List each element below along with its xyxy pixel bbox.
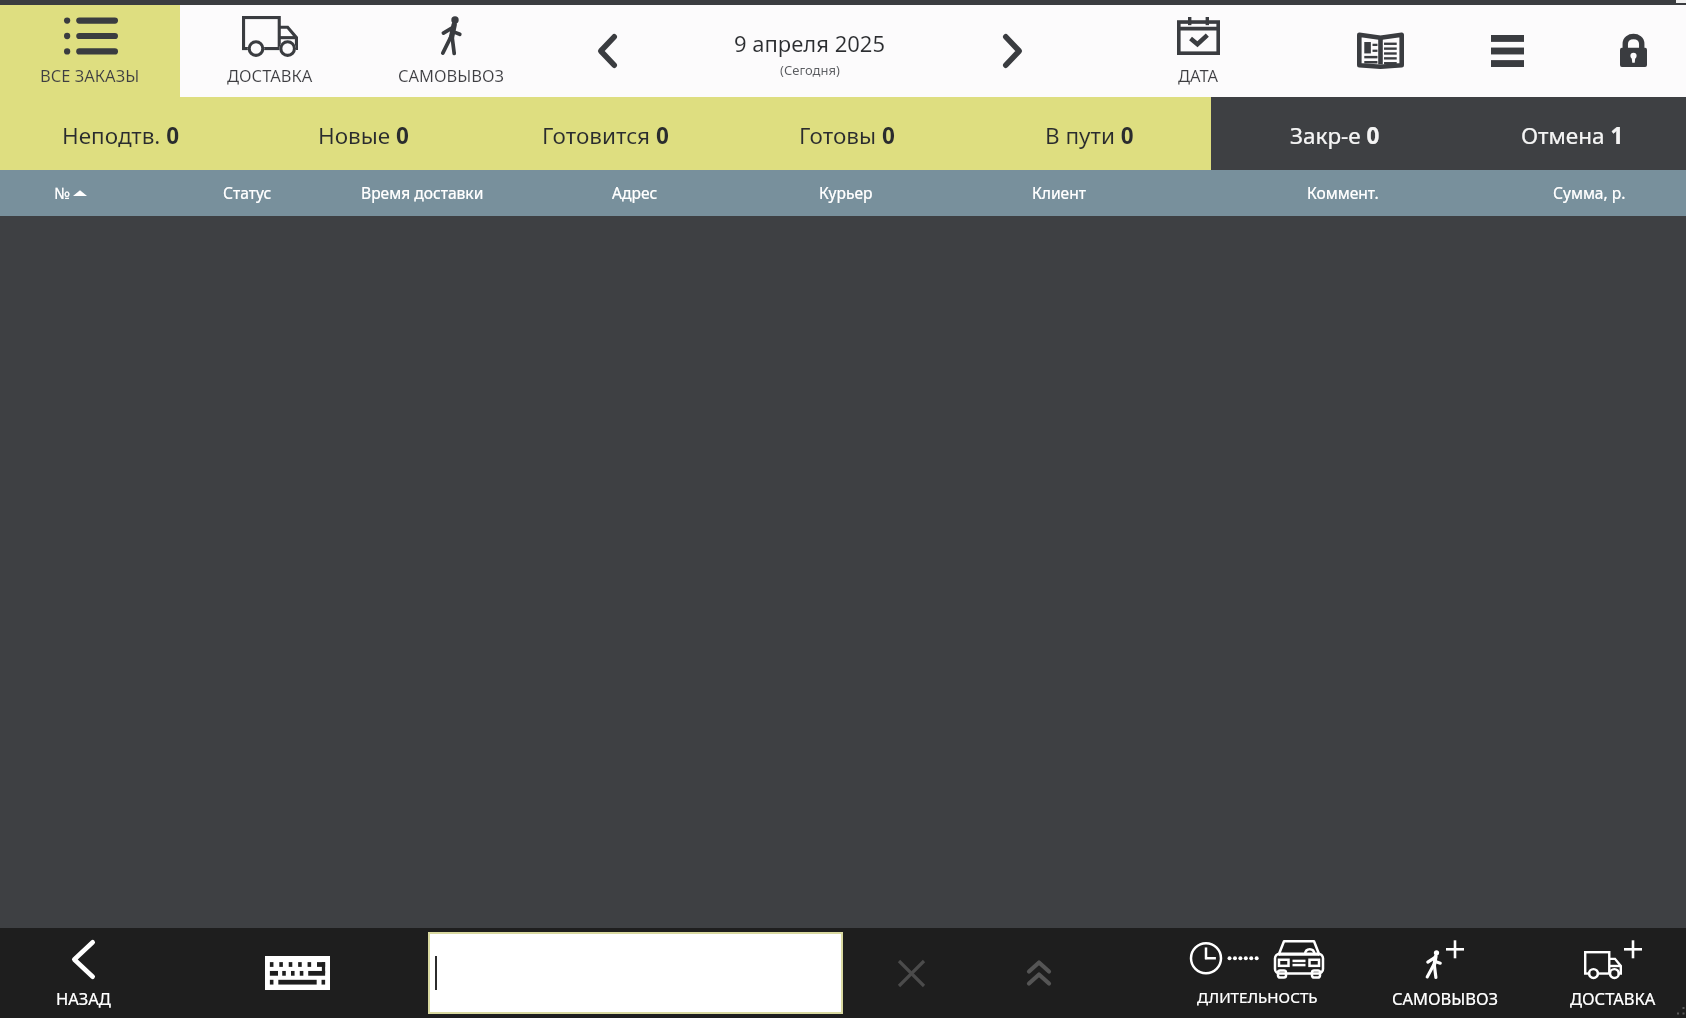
staticText: САМОВЫВОЗ: [398, 64, 504, 86]
button[interactable]: Неподтв. 0: [0, 97, 242, 170]
button[interactable]: Готовится 0: [484, 97, 726, 170]
button[interactable]: Следующий день: [966, 15, 1059, 87]
button[interactable]: №: [0, 170, 150, 216]
button[interactable]: НАЗАД: [0, 928, 167, 1018]
staticText: В пути 0: [1045, 120, 1134, 151]
button[interactable]: Курьер: [766, 170, 926, 216]
staticText: ДОСТАВКА: [227, 64, 313, 86]
button[interactable]: Сумма, р.: [1509, 170, 1669, 216]
button[interactable]: 9 апреля 2025: [660, 12, 960, 94]
staticText: Курьер: [819, 182, 873, 203]
button[interactable]: Свернуть: [1001, 954, 1076, 992]
staticText: ВСЕ ЗАКАЗЫ: [40, 64, 140, 86]
button[interactable]: Коммент.: [1263, 170, 1423, 216]
staticText: Сумма, р.: [1553, 182, 1626, 203]
staticText: Клиент: [1032, 182, 1087, 203]
button[interactable]: Блокировка: [1578, 14, 1686, 86]
staticText: ДОСТАВКА: [1570, 987, 1656, 1009]
staticText: Адрес: [612, 182, 658, 203]
staticText: Закр-е 0: [1290, 120, 1380, 151]
staticText: САМОВЫВОЗ: [1392, 987, 1498, 1009]
staticText: Готовится 0: [542, 120, 669, 151]
button[interactable]: Закр-е 0: [1211, 97, 1458, 170]
button[interactable]: ДОСТАВКА: [1523, 928, 1686, 1018]
button[interactable]: Меню: [1452, 15, 1562, 87]
button[interactable]: Время доставки: [342, 170, 502, 216]
button[interactable]: Поиск: [428, 932, 843, 1014]
button[interactable]: Готовы 0: [726, 97, 968, 170]
button[interactable]: САМОВЫВОЗ: [1355, 928, 1535, 1018]
button[interactable]: Адрес: [555, 170, 715, 216]
button[interactable]: Справочник: [1320, 14, 1440, 86]
button[interactable]: Отмена 1: [1458, 97, 1686, 170]
button[interactable]: Предыдущий день: [561, 15, 654, 87]
button[interactable]: Самовывоз: [360, 5, 541, 97]
staticText: 9 апреля 2025: [734, 28, 886, 58]
button[interactable]: В пути 0: [968, 97, 1211, 170]
staticText: Готовы 0: [799, 120, 895, 151]
staticText: Статус: [223, 182, 272, 203]
staticText: НАЗАД: [56, 987, 111, 1009]
staticText: Новые 0: [318, 120, 409, 151]
staticText: Отмена 1: [1521, 120, 1624, 151]
staticText: Время доставки: [361, 182, 484, 203]
staticText: Коммент.: [1307, 182, 1379, 203]
button[interactable]: Доставка: [180, 5, 360, 97]
button[interactable]: Очистить: [874, 954, 949, 992]
staticText: ДЛИТЕЛЬНОСТЬ: [1197, 987, 1318, 1008]
button[interactable]: ВСЕ ЗАКАЗЫ: [0, 5, 180, 97]
button[interactable]: Новые 0: [242, 97, 484, 170]
staticText: ДАТА: [1178, 64, 1218, 86]
button[interactable]: Клавиатура: [232, 956, 362, 990]
staticText: (Сегодня): [780, 61, 840, 79]
staticText: Неподтв. 0: [62, 120, 180, 151]
button[interactable]: Статус: [167, 170, 327, 216]
button[interactable]: ДЛИТЕЛЬНОСТЬ: [1146, 928, 1368, 1018]
staticText: №: [54, 182, 70, 203]
button[interactable]: Дата: [1113, 5, 1283, 97]
button[interactable]: Клиент: [979, 170, 1139, 216]
